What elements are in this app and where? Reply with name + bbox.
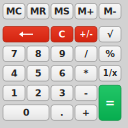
staticText: 0 xyxy=(23,107,29,118)
staticText: 5 xyxy=(35,68,41,79)
staticText: M+ xyxy=(77,6,94,17)
staticText: √ xyxy=(107,29,113,40)
button[interactable]: . xyxy=(51,105,73,120)
button[interactable]: Backspace xyxy=(3,26,49,42)
staticText: 4 xyxy=(11,68,17,79)
staticText: % xyxy=(105,48,114,59)
staticText: 1/x xyxy=(103,69,117,78)
staticText: + xyxy=(82,107,90,118)
button[interactable]: 9 xyxy=(51,46,73,61)
staticText: 3 xyxy=(59,87,65,98)
button[interactable]: M+ xyxy=(75,3,97,19)
button[interactable]: - xyxy=(75,85,97,101)
button[interactable]: 0 xyxy=(3,105,49,120)
staticText: 2 xyxy=(35,87,41,98)
button[interactable]: 7 xyxy=(3,46,25,61)
staticText: 7 xyxy=(11,48,17,59)
button[interactable]: / xyxy=(75,46,97,61)
button[interactable]: + xyxy=(75,105,97,120)
staticText: MS xyxy=(54,6,70,17)
staticText: 1 xyxy=(11,87,17,98)
button[interactable]: 1 xyxy=(3,85,25,101)
staticText: MC xyxy=(6,6,22,17)
button[interactable]: √ xyxy=(99,26,121,42)
button[interactable]: = xyxy=(99,85,121,120)
button[interactable]: MR xyxy=(27,3,49,19)
button[interactable]: 4 xyxy=(3,66,25,81)
staticText: * xyxy=(83,68,88,79)
staticText: 9 xyxy=(59,48,65,59)
button[interactable]: * xyxy=(75,66,97,81)
button[interactable]: 1/x xyxy=(99,66,121,81)
staticText: M- xyxy=(103,6,116,17)
button[interactable]: M- xyxy=(99,3,121,19)
staticText: = xyxy=(105,96,115,110)
button[interactable]: % xyxy=(99,46,121,61)
staticText: . xyxy=(60,107,64,118)
button[interactable]: C xyxy=(51,26,73,42)
button[interactable]: +/- xyxy=(75,26,97,42)
staticText: +/- xyxy=(79,30,92,39)
button[interactable]: 8 xyxy=(27,46,49,61)
staticText: 8 xyxy=(35,48,41,59)
staticText: / xyxy=(84,48,87,59)
staticText: MR xyxy=(30,6,46,17)
button[interactable]: 5 xyxy=(27,66,49,81)
button[interactable]: 2 xyxy=(27,85,49,101)
button[interactable]: MC xyxy=(3,3,25,19)
staticText: - xyxy=(84,87,88,98)
button[interactable]: 6 xyxy=(51,66,73,81)
staticText: C xyxy=(58,29,65,40)
staticText: 6 xyxy=(59,68,65,79)
button[interactable]: 3 xyxy=(51,85,73,101)
button[interactable]: MS xyxy=(51,3,73,19)
